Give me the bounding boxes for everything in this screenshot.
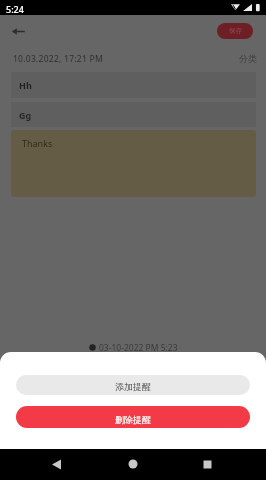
staticText: 5:24	[6, 3, 24, 15]
button[interactable]: Back	[8, 21, 29, 42]
button[interactable]: 分类	[236, 52, 260, 65]
staticText: 10.03.2022, 17:21 PM	[13, 53, 104, 65]
staticText: 保存	[229, 27, 242, 35]
staticText: 添加提醒	[115, 381, 151, 392]
button[interactable]: Home	[120, 451, 146, 477]
staticText: 删除提醒	[115, 414, 151, 425]
staticText: 03-10-2022 PM 5:23	[99, 342, 178, 353]
button[interactable]: 添加提醒	[16, 375, 250, 395]
staticText: 分类	[239, 53, 257, 64]
button[interactable]: Recent apps	[194, 451, 221, 478]
staticText: Thanks	[22, 137, 53, 149]
staticText: Gg	[19, 109, 32, 121]
button[interactable]: Back	[43, 451, 70, 478]
button[interactable]: 删除提醒	[16, 406, 250, 428]
button[interactable]: Hh	[11, 72, 256, 98]
button[interactable]: 保存	[217, 23, 253, 39]
button[interactable]: Gg	[11, 102, 256, 127]
staticText: Hh	[19, 79, 32, 91]
